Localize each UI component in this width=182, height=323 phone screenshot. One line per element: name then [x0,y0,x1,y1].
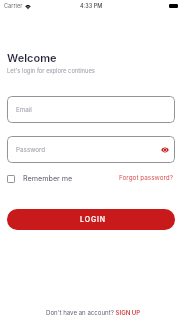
staticText: Forgot password? [119,174,174,182]
other: Wi-Fi [25,3,31,9]
staticText: Don't have an account? SIGN UP [46,309,141,316]
button[interactable]: Email [7,96,175,123]
button[interactable]: Forgot password? [119,171,174,185]
staticText: Remember me [23,174,73,183]
staticText: LOGIN [80,215,107,223]
button[interactable]: LOGIN [7,209,175,230]
staticText: 4:33 PM [80,3,103,10]
staticText: Password [16,146,46,154]
button[interactable]: Password [7,136,175,163]
button[interactable]: Remember me [7,171,73,186]
staticText: Carrier [4,3,23,10]
staticText: Let's login for explore continues [7,67,95,74]
staticText: Welcome [7,51,57,64]
staticText: Email [16,106,32,114]
button[interactable]: Show password [161,146,169,154]
button[interactable]: Don't have an account? SIGN UP [42,307,145,318]
